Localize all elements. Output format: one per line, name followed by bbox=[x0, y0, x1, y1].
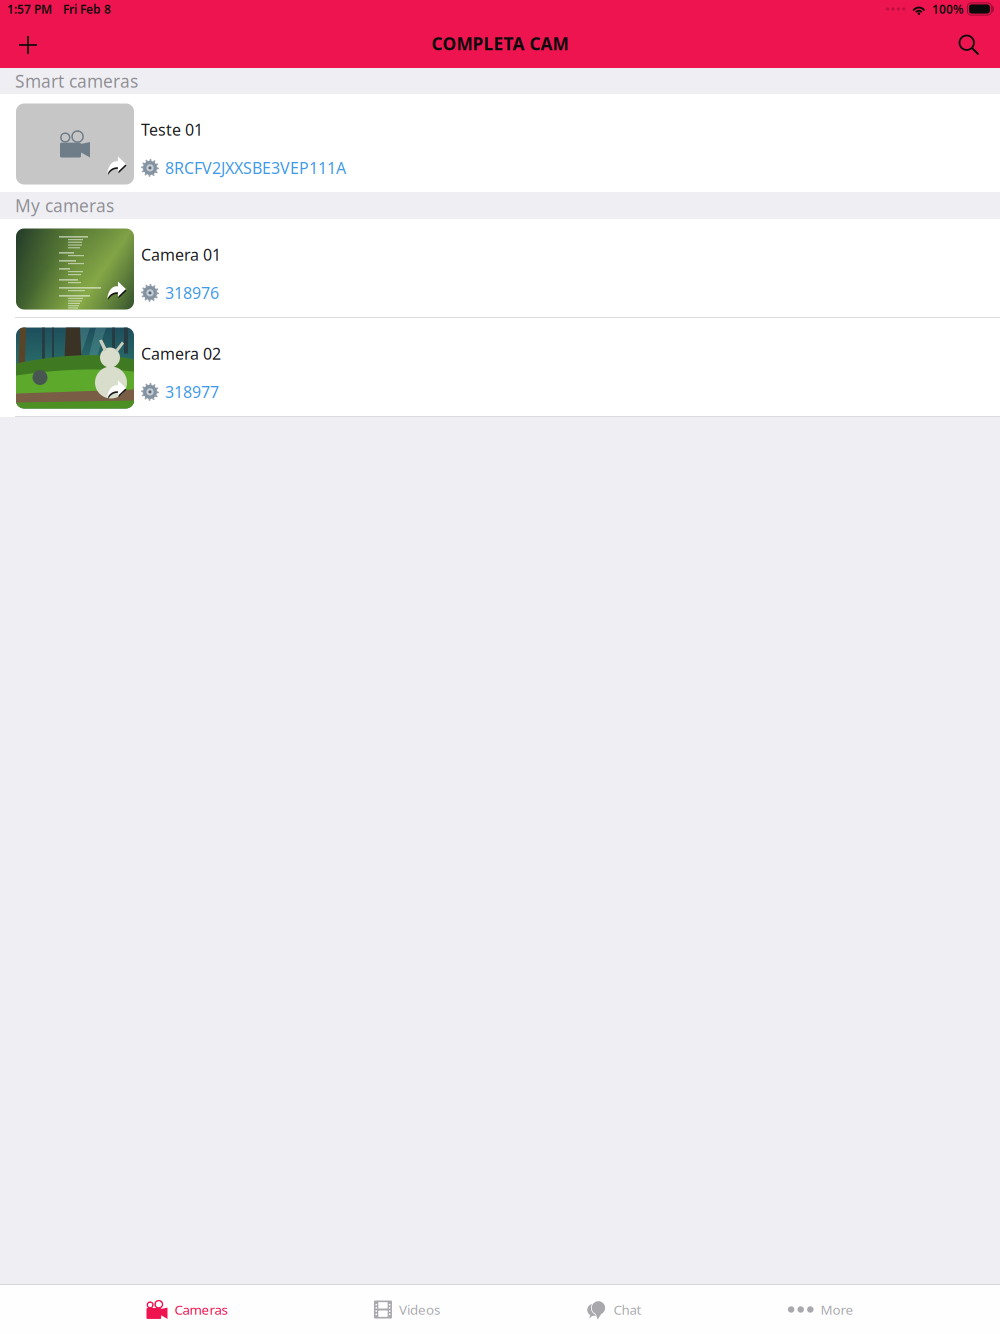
button[interactable]: Videos bbox=[374, 1285, 440, 1334]
button[interactable]: Search bbox=[946, 22, 992, 68]
staticText: Camera 02 bbox=[141, 343, 221, 364]
staticText: Teste 01 bbox=[141, 119, 203, 140]
staticText: Fri Feb 8 bbox=[63, 1, 111, 17]
staticText: 8RCFV2JXXSBE3VEP111A bbox=[165, 157, 346, 178]
staticText: COMPLETA CAM bbox=[431, 32, 568, 55]
staticText: 318976 bbox=[165, 282, 219, 303]
button[interactable]: Camera 02 bbox=[0, 318, 1000, 416]
staticText: 1:57 PM bbox=[7, 1, 52, 17]
staticText: My cameras bbox=[15, 194, 114, 217]
button[interactable]: Camera 01 bbox=[0, 219, 1000, 317]
staticText: 318977 bbox=[165, 381, 219, 402]
staticText: Cameras bbox=[174, 1301, 227, 1318]
button[interactable]: Teste 01 bbox=[0, 94, 1000, 192]
button[interactable]: Cameras bbox=[146, 1285, 227, 1334]
staticText: More bbox=[820, 1301, 853, 1318]
button[interactable]: Chat bbox=[586, 1285, 641, 1334]
staticText: Smart cameras bbox=[15, 69, 138, 92]
staticText: Camera 01 bbox=[141, 244, 221, 265]
staticText: Chat bbox=[613, 1301, 641, 1318]
staticText: 100% bbox=[932, 1, 964, 17]
button[interactable]: More bbox=[788, 1285, 853, 1334]
staticText: Videos bbox=[399, 1301, 440, 1318]
button[interactable]: Add camera bbox=[5, 22, 51, 68]
